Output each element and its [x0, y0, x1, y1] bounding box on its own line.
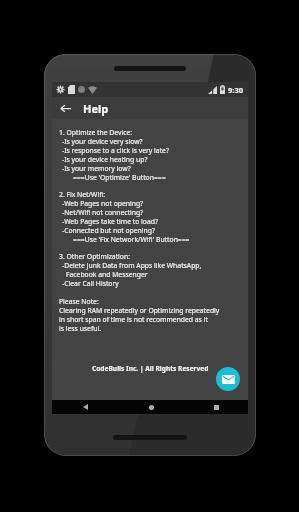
button[interactable]: Home	[144, 400, 158, 414]
staticText: -Is your device very slow?	[62, 137, 143, 146]
staticText: -Web Pages not opening?	[62, 199, 144, 208]
staticText: -Connected but not opening?	[62, 226, 155, 235]
button[interactable]: Recent apps	[209, 400, 223, 414]
staticText: -Is your memory low?	[62, 164, 131, 173]
staticText: 3. Other Optimization:	[59, 252, 130, 261]
button[interactable]: Navigate up	[56, 99, 74, 117]
staticText: Clearing RAM repeatedly or Optimizing re…	[59, 306, 220, 315]
staticText: Help	[83, 101, 109, 116]
staticText: -Web Pages take time to load?	[62, 217, 158, 226]
button[interactable]: Send feedback email	[216, 367, 240, 391]
staticText: is less useful.	[59, 324, 102, 333]
staticText: 9:30	[228, 85, 243, 95]
staticText: -Net/Wifi not connecting?	[62, 208, 144, 217]
staticText: ===Use 'Optimize' Button===	[73, 173, 166, 182]
staticText: ===Use 'Fix Network/Wifi' Button===	[73, 235, 190, 244]
staticText: in short span of time is not recommended…	[59, 315, 208, 324]
staticText: -Is response to a click is very late?	[62, 146, 169, 155]
staticText: 1. Optimize the Device:	[59, 128, 133, 137]
button[interactable]: Back	[78, 400, 92, 414]
staticText: -Delete Junk Data from Apps like WhatsAp…	[62, 261, 202, 270]
staticText: CodeBulls Inc. | All Rights Reserved	[92, 364, 209, 373]
staticText: Facebook and Messenger	[66, 270, 148, 279]
staticText: -Clear Call History	[62, 279, 119, 288]
staticText: Please Note:	[59, 297, 99, 306]
staticText: 2. Fix Net/Wifi:	[59, 190, 106, 199]
staticText: -Is your device heating up?	[62, 155, 148, 164]
